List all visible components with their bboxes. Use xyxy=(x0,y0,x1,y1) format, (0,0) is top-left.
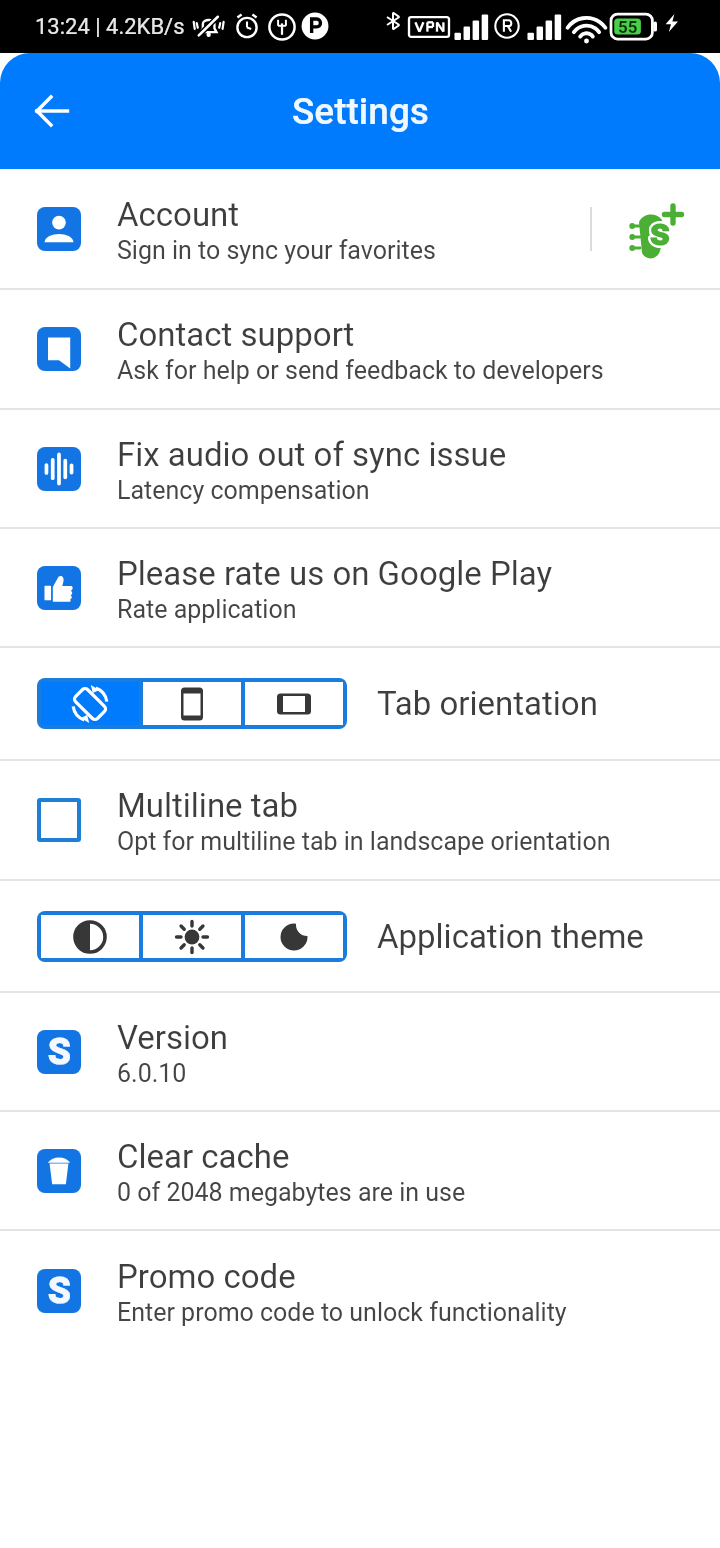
staticText: 55 xyxy=(618,17,638,37)
button[interactable]: Account xyxy=(0,169,720,288)
staticText: S xyxy=(48,1269,71,1312)
staticText: s xyxy=(650,211,671,257)
button[interactable]: Application theme option 3 xyxy=(245,915,343,958)
staticText: 6.0.10 xyxy=(117,1059,187,1088)
staticText: Rate application xyxy=(117,595,297,624)
staticText: Fix audio out of sync issue xyxy=(117,435,507,474)
staticText: Application theme xyxy=(377,917,644,956)
staticText: s xyxy=(652,210,673,256)
staticText: s xyxy=(649,209,670,255)
button[interactable]: Tab orientation option 1 xyxy=(41,682,139,725)
staticText: s xyxy=(650,210,671,256)
staticText: Clear cache xyxy=(117,1137,290,1176)
staticText: s xyxy=(648,210,669,256)
staticText: 0 of 2048 megabytes are in use xyxy=(117,1178,466,1207)
staticText: s xyxy=(649,207,670,253)
button[interactable]: Contact support xyxy=(0,290,720,408)
staticText: s xyxy=(648,209,669,255)
staticText: Latency compensation xyxy=(117,476,370,505)
staticText: Please rate us on Google Play xyxy=(117,554,553,593)
staticText: s xyxy=(651,210,672,256)
button[interactable]: Tab orientation option 2 xyxy=(143,682,241,725)
button[interactable]: Multiline tab xyxy=(0,761,720,879)
button[interactable]: Clear cache xyxy=(0,1112,720,1229)
staticText: Version xyxy=(117,1018,229,1057)
staticText: s xyxy=(652,209,673,255)
staticText: s xyxy=(651,209,672,255)
button[interactable]: Back xyxy=(20,79,84,143)
staticText: Account xyxy=(117,195,240,234)
button[interactable]: Application theme option 2 xyxy=(143,915,241,958)
staticText: s xyxy=(649,210,670,256)
button[interactable]: Application theme option 1 xyxy=(41,915,139,958)
staticText: Opt for multiline tab in landscape orien… xyxy=(117,827,611,856)
staticText: Contact support xyxy=(117,315,355,354)
staticText: s xyxy=(650,209,671,255)
staticText: s xyxy=(650,208,671,254)
staticText: 13:24 | 4.2KB/s xyxy=(35,14,185,40)
button[interactable]: S xyxy=(0,1231,720,1350)
staticText: s xyxy=(649,208,670,254)
staticText: Settings xyxy=(292,90,429,133)
button[interactable]: Fix audio out of sync issue xyxy=(0,410,720,527)
staticText: Promo code xyxy=(117,1257,296,1296)
staticText: Tab orientation xyxy=(377,684,598,723)
staticText: Multiline tab xyxy=(117,786,299,825)
staticText: s xyxy=(651,207,672,253)
staticText: Sign in to sync your favorites xyxy=(117,236,436,265)
staticText: s xyxy=(649,211,670,257)
staticText: s xyxy=(652,208,673,254)
staticText: Enter promo code to unlock functionality xyxy=(117,1298,567,1327)
staticText: s xyxy=(651,208,672,254)
staticText: s xyxy=(648,208,669,254)
staticText: s xyxy=(650,209,671,255)
staticText: s xyxy=(650,207,671,253)
staticText: Ask for help or send feedback to develop… xyxy=(117,356,604,385)
button[interactable]: Tab orientation option 3 xyxy=(245,682,343,725)
staticText: S xyxy=(48,1030,71,1073)
button[interactable]: Please rate us on Google Play xyxy=(0,529,720,646)
staticText: s xyxy=(651,211,672,257)
button[interactable]: S xyxy=(0,993,720,1110)
